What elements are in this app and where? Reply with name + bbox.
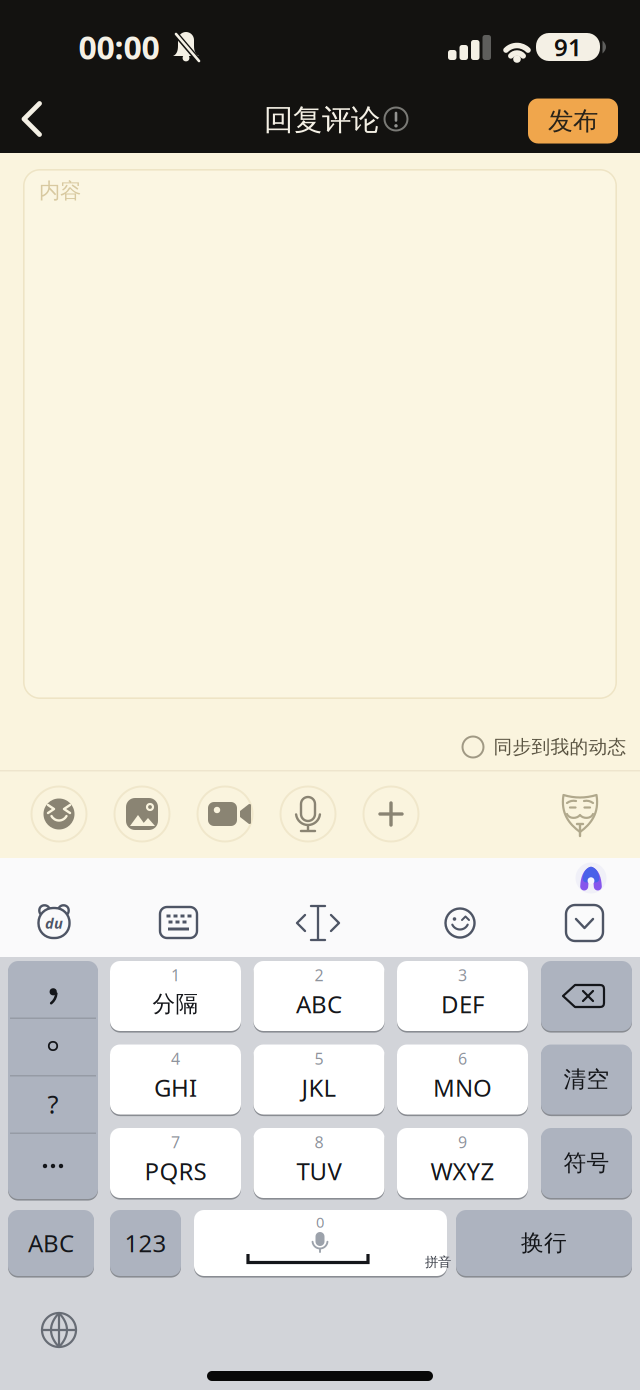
staticText: PQRS [144, 1155, 206, 1187]
staticText: WXYZ [430, 1155, 494, 1187]
staticText: 换行 [521, 1229, 567, 1257]
staticText: 8 [314, 1131, 323, 1153]
staticText: 7 [171, 1131, 180, 1153]
staticText: 清空 [563, 1066, 609, 1093]
staticText: ? [47, 1087, 58, 1121]
staticText: 2 [314, 964, 323, 986]
staticText: 1 [171, 964, 180, 986]
staticText: 91 [554, 31, 582, 63]
staticText: 内容 [39, 178, 81, 204]
staticText: 5 [314, 1048, 323, 1069]
staticText: DEF [441, 988, 484, 1020]
staticText: 4 [171, 1048, 180, 1069]
staticText: 同步到我的动态 [493, 735, 626, 758]
staticText: TUV [296, 1155, 341, 1187]
staticText: 分隔 [152, 990, 198, 1018]
staticText: GHI [154, 1072, 197, 1103]
staticText: 3 [458, 964, 467, 986]
staticText: 发布 [548, 105, 598, 136]
staticText: 回复评论 [264, 102, 380, 138]
staticText: 123 [124, 1227, 166, 1259]
staticText: du [45, 913, 63, 933]
staticText: 符号 [563, 1149, 609, 1177]
staticText: MNO [433, 1072, 492, 1103]
staticText: ABC [28, 1227, 74, 1259]
staticText: JKL [301, 1072, 336, 1103]
staticText: ABC [296, 988, 342, 1020]
staticText: 9 [458, 1131, 467, 1153]
staticText: 拼音 [425, 1254, 451, 1270]
staticText: 00:00 [78, 26, 159, 68]
staticText: 6 [458, 1048, 467, 1069]
staticText: 0 [316, 1212, 324, 1232]
